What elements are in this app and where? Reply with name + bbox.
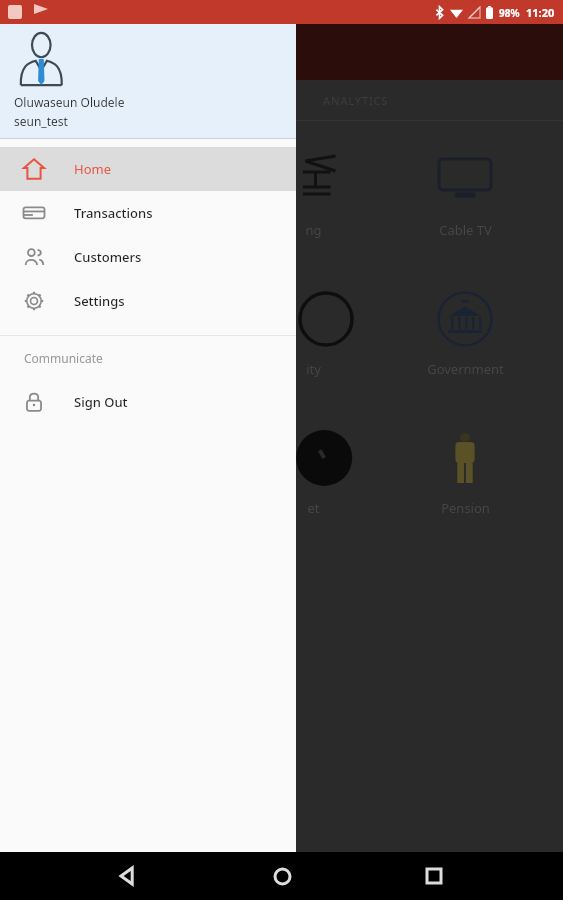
- button[interactable]: ng: [258, 149, 368, 239]
- staticText: 98%: [499, 6, 520, 20]
- staticText: Government: [427, 360, 504, 378]
- staticText: et: [307, 499, 320, 517]
- staticText: ANALYTICS: [323, 93, 389, 108]
- staticText: Sign Out: [74, 393, 128, 411]
- staticText: Home: [74, 160, 111, 178]
- button[interactable]: Customers: [0, 235, 296, 279]
- button[interactable]: et: [258, 427, 368, 517]
- staticText: Transactions: [74, 204, 153, 222]
- button[interactable]: Sign Out: [0, 380, 296, 424]
- staticText: 11:20: [526, 5, 555, 20]
- button[interactable]: Cable TV: [410, 149, 520, 239]
- staticText: ity: [306, 360, 321, 378]
- button[interactable]: Government: [410, 288, 520, 378]
- staticText: Communicate: [24, 350, 103, 366]
- button[interactable]: ity: [258, 288, 368, 378]
- button[interactable]: Home: [0, 147, 296, 191]
- staticText: Settings: [74, 292, 125, 310]
- staticText: seun_test: [14, 113, 68, 129]
- staticText: Oluwaseun Oludele: [14, 94, 125, 110]
- button[interactable]: Back: [105, 852, 153, 900]
- staticText: Customers: [74, 248, 142, 266]
- button[interactable]: Pension: [410, 427, 520, 517]
- button[interactable]: Home: [258, 852, 306, 900]
- staticText: Cable TV: [439, 221, 492, 239]
- button[interactable]: Oluwaseun Oludele: [0, 24, 296, 138]
- button[interactable]: Transactions: [0, 191, 296, 235]
- button[interactable]: Recent apps: [410, 852, 458, 900]
- staticText: ng: [305, 221, 322, 239]
- staticText: Pension: [441, 499, 490, 517]
- button[interactable]: Settings: [0, 279, 296, 323]
